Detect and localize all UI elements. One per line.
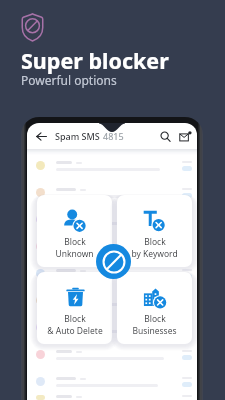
staticText: Block (144, 313, 166, 325)
button[interactable]: Block (117, 272, 192, 344)
staticText: 4815 (103, 130, 124, 142)
staticText: Businesses (132, 325, 177, 337)
staticText: Powerful options (21, 72, 117, 88)
staticText: Block (64, 236, 86, 248)
button[interactable]: Mark as read (179, 130, 192, 143)
staticText: Spam SMS (55, 130, 100, 142)
button[interactable]: Back (35, 130, 48, 143)
staticText: by Keyword (131, 248, 178, 260)
button[interactable]: Block (117, 195, 192, 267)
button[interactable]: Block (37, 195, 112, 267)
staticText: Super blocker (21, 46, 169, 75)
staticText: & Auto Delete (47, 325, 103, 337)
staticText: Block (144, 236, 166, 248)
button[interactable]: Block (37, 272, 112, 344)
button[interactable]: Blocking enabled (96, 244, 131, 279)
staticText: Unknown (55, 248, 94, 260)
button[interactable]: Search (160, 131, 171, 142)
staticText: Block (64, 313, 86, 325)
